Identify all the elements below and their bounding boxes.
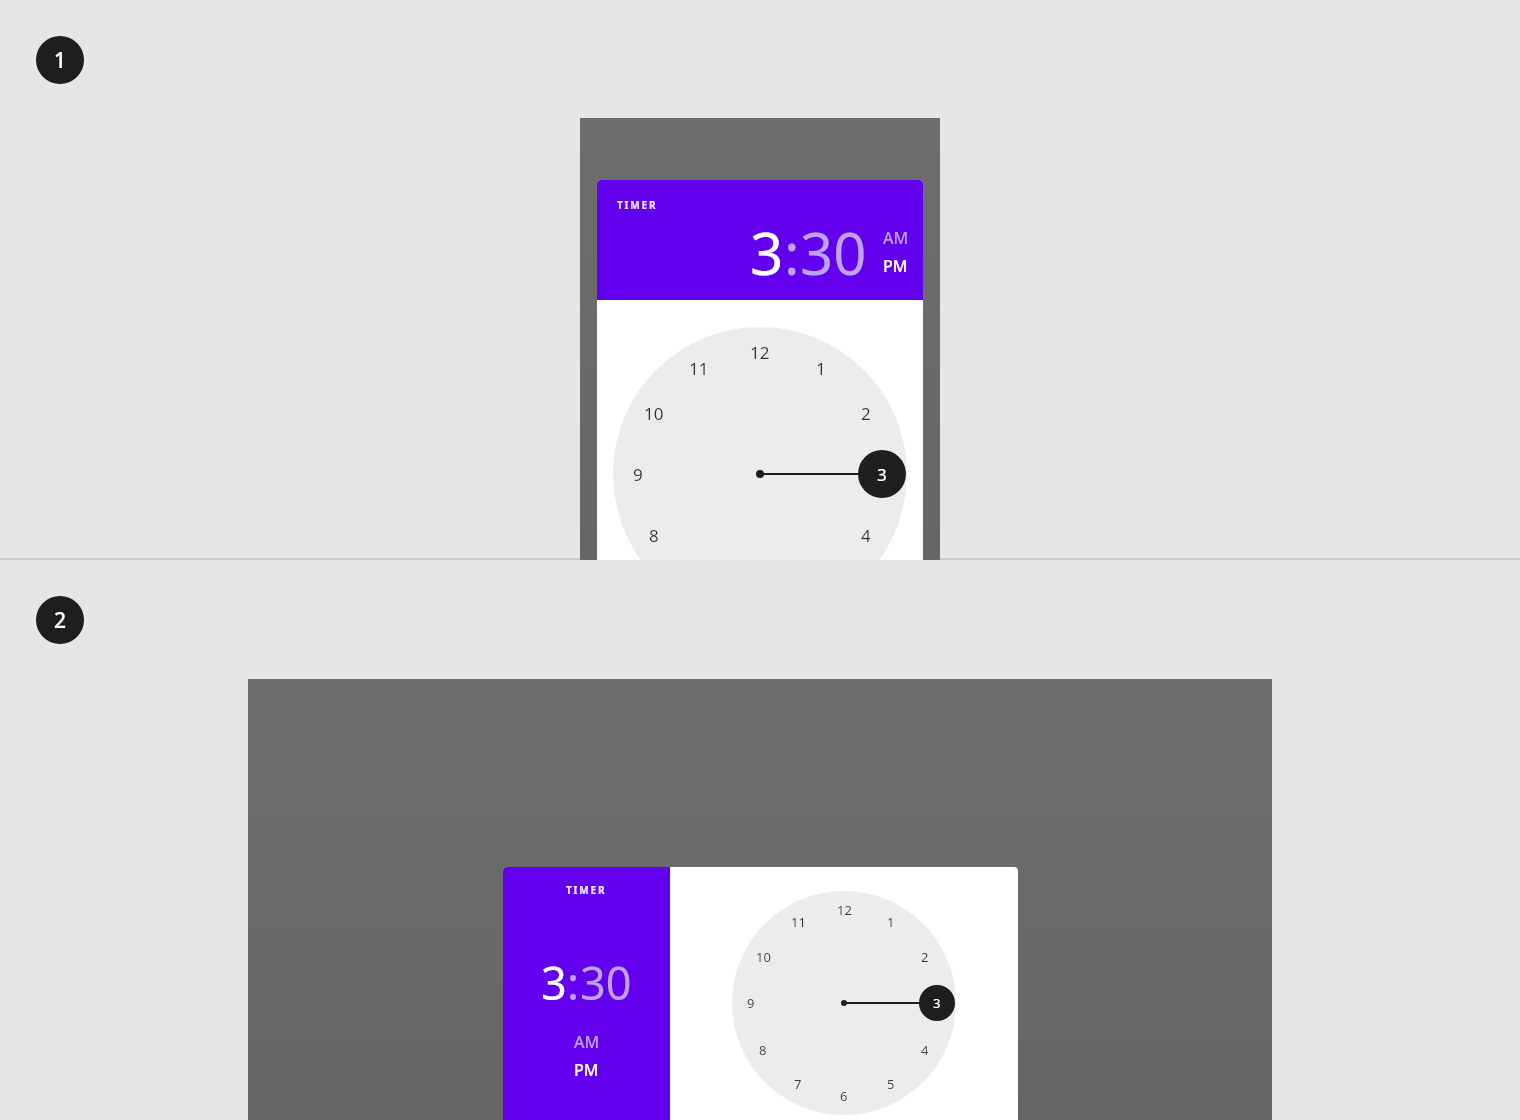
button[interactable]: 8 <box>745 1036 781 1064</box>
staticText: 8 <box>649 524 659 547</box>
button[interactable]: AM <box>574 1031 600 1053</box>
staticText: 11 <box>791 913 806 931</box>
button[interactable]: 7 <box>780 1070 816 1098</box>
staticText: 2 <box>861 402 871 425</box>
button[interactable]: 30 <box>580 952 632 1013</box>
button[interactable]: 9 <box>733 989 769 1017</box>
button[interactable]: PM <box>883 255 908 277</box>
button[interactable]: 1 <box>873 908 909 936</box>
staticText: 11 <box>689 357 709 380</box>
staticText: 2 <box>54 606 67 635</box>
button[interactable]: Variant 2 <box>36 596 84 644</box>
button[interactable]: 3 <box>864 460 900 488</box>
button[interactable]: 30 <box>800 213 867 292</box>
button[interactable]: 6 <box>826 1082 862 1110</box>
staticText: 9 <box>633 463 643 486</box>
button[interactable]: 1 <box>803 354 839 382</box>
staticText: 12 <box>750 341 770 364</box>
button[interactable]: 10 <box>745 943 781 971</box>
button[interactable]: 4 <box>848 521 884 549</box>
button[interactable]: 10 <box>636 399 672 427</box>
button[interactable]: 12 <box>826 896 862 924</box>
button[interactable]: Variant 1 <box>36 36 84 84</box>
staticText: 1 <box>816 357 826 380</box>
staticText: 3 <box>933 994 941 1012</box>
staticText: 1 <box>887 913 895 931</box>
button[interactable]: 8 <box>636 521 672 549</box>
button[interactable]: 4 <box>907 1036 943 1064</box>
staticText: : <box>567 952 580 1013</box>
staticText: 6 <box>840 1087 848 1105</box>
button[interactable]: 11 <box>780 908 816 936</box>
staticText: 5 <box>887 1075 895 1093</box>
staticText: : <box>784 213 800 292</box>
button[interactable]: AM <box>883 227 909 249</box>
staticText: 4 <box>861 524 871 547</box>
staticText: 4 <box>921 1041 929 1059</box>
button[interactable]: 3 <box>541 952 567 1013</box>
staticText: 1 <box>54 46 67 75</box>
staticText: 2 <box>921 948 929 966</box>
staticText: 10 <box>644 402 664 425</box>
staticText: 9 <box>747 994 755 1012</box>
button[interactable]: 5 <box>873 1070 909 1098</box>
button[interactable]: 3 <box>750 213 784 292</box>
button[interactable]: 2 <box>907 943 943 971</box>
staticText: 7 <box>794 1075 802 1093</box>
staticText: 10 <box>756 948 771 966</box>
staticText: TIMER <box>566 883 607 897</box>
button[interactable]: 12 <box>742 338 778 366</box>
staticText: 3 <box>877 463 887 486</box>
button[interactable]: 3 <box>919 989 955 1017</box>
staticText: 12 <box>837 901 852 919</box>
button[interactable]: 11 <box>681 354 717 382</box>
button[interactable]: 9 <box>620 460 656 488</box>
button[interactable]: PM <box>574 1059 599 1081</box>
button[interactable]: 2 <box>848 399 884 427</box>
staticText: 8 <box>759 1041 767 1059</box>
staticText: TIMER <box>617 198 658 212</box>
